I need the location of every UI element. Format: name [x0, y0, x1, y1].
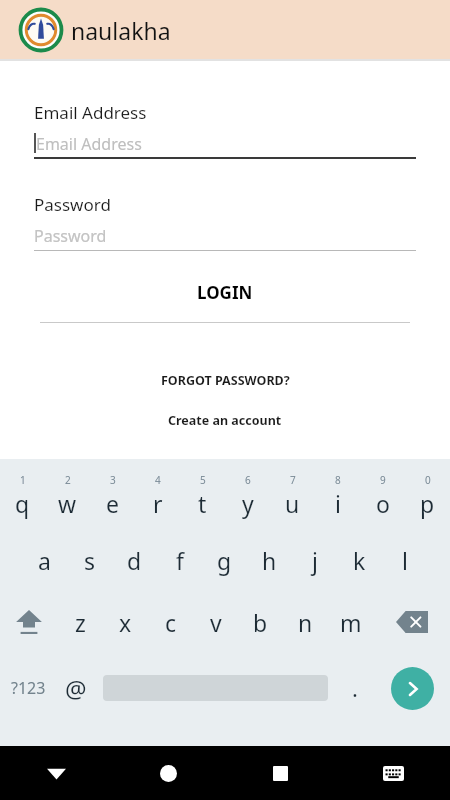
staticText: 5: [200, 473, 206, 487]
staticText: g: [217, 545, 232, 576]
staticText: x: [119, 607, 132, 638]
staticText: p: [420, 488, 435, 519]
button[interactable]: k: [337, 529, 382, 591]
staticText: b: [253, 607, 268, 638]
staticText: LOGIN: [197, 281, 253, 304]
staticText: 6: [245, 473, 251, 487]
staticText: d: [127, 545, 142, 576]
staticText: o: [376, 488, 390, 519]
button[interactable]: n: [283, 591, 328, 653]
staticText: u: [285, 488, 300, 519]
button[interactable]: f: [157, 529, 202, 591]
button[interactable]: Create an account: [0, 408, 450, 432]
staticText: r: [153, 488, 163, 519]
staticText: e: [106, 488, 119, 519]
staticText: 3: [110, 473, 116, 487]
button[interactable]: 9: [360, 467, 405, 529]
button[interactable]: 4: [135, 467, 180, 529]
staticText: v: [210, 607, 222, 638]
button[interactable]: 8: [315, 467, 360, 529]
staticText: Password: [34, 193, 111, 216]
staticText: FORGOT PASSWORD?: [161, 372, 290, 389]
button[interactable]: 7: [270, 467, 315, 529]
button[interactable]: 3: [90, 467, 135, 529]
staticText: h: [262, 545, 277, 576]
staticText: f: [176, 545, 184, 576]
button[interactable]: Space: [96, 653, 335, 723]
button[interactable]: x: [103, 591, 148, 653]
button[interactable]: .: [335, 653, 375, 723]
staticText: l: [402, 545, 408, 576]
staticText: 7: [290, 473, 296, 487]
staticText: Create an account: [168, 412, 282, 429]
staticText: 8: [335, 473, 341, 487]
button[interactable]: d: [112, 529, 157, 591]
staticText: 9: [380, 473, 386, 487]
button[interactable]: Backspace: [373, 591, 450, 653]
button[interactable]: Home: [112, 746, 224, 800]
staticText: 1: [20, 473, 26, 487]
button[interactable]: 0: [405, 467, 450, 529]
button[interactable]: Enter: [375, 653, 450, 723]
button[interactable]: ?123: [0, 653, 56, 723]
staticText: k: [353, 545, 366, 576]
button[interactable]: l: [382, 529, 427, 591]
staticText: Email Address: [34, 101, 147, 124]
button[interactable]: 1: [0, 467, 45, 529]
staticText: i: [335, 488, 341, 519]
staticText: s: [84, 545, 96, 576]
button[interactable]: z: [58, 591, 103, 653]
button[interactable]: c: [148, 591, 193, 653]
button[interactable]: @: [56, 653, 96, 723]
button[interactable]: 6: [225, 467, 270, 529]
button[interactable]: Back: [0, 746, 112, 800]
button[interactable]: Switch keyboard: [337, 746, 450, 800]
button[interactable]: 2: [45, 467, 90, 529]
button[interactable]: FORGOT PASSWORD?: [0, 368, 450, 392]
staticText: Password: [34, 225, 107, 247]
staticText: a: [38, 545, 51, 576]
button[interactable]: LOGIN: [0, 275, 450, 309]
staticText: 2: [65, 473, 71, 487]
button[interactable]: v: [193, 591, 238, 653]
button[interactable]: s: [67, 529, 112, 591]
staticText: q: [15, 488, 30, 519]
staticText: Email Address: [36, 133, 142, 155]
staticText: ?123: [11, 677, 46, 699]
staticText: z: [75, 607, 86, 638]
staticText: .: [352, 673, 358, 703]
staticText: c: [165, 607, 177, 638]
staticText: naulakha: [71, 15, 171, 46]
staticText: @: [65, 672, 87, 705]
button[interactable]: a: [22, 529, 67, 591]
staticText: m: [340, 607, 362, 638]
staticText: y: [242, 488, 254, 519]
button[interactable]: Recents: [224, 746, 337, 800]
staticText: w: [58, 488, 77, 519]
button[interactable]: m: [328, 591, 373, 653]
staticText: j: [312, 545, 318, 576]
button[interactable]: j: [292, 529, 337, 591]
staticText: 4: [155, 473, 161, 487]
button[interactable]: 5: [180, 467, 225, 529]
button[interactable]: h: [247, 529, 292, 591]
button[interactable]: g: [202, 529, 247, 591]
button[interactable]: Shift: [0, 591, 58, 653]
staticText: n: [298, 607, 313, 638]
staticText: t: [198, 488, 207, 519]
button[interactable]: b: [238, 591, 283, 653]
staticText: 0: [425, 473, 431, 487]
